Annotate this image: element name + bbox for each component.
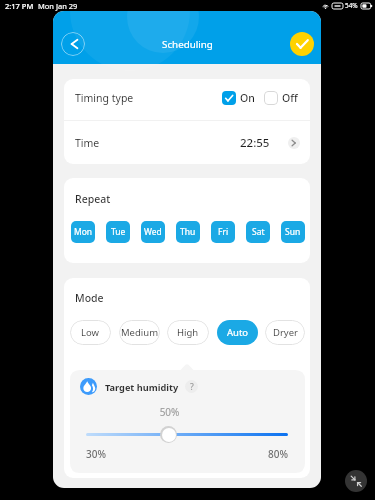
button[interactable]: Tue: [106, 221, 130, 243]
button[interactable]: Low: [70, 320, 111, 345]
staticText: Tue: [111, 226, 126, 238]
staticText: 50%: [149, 405, 190, 419]
staticText: Repeat: [75, 192, 111, 206]
button[interactable]: Back: [61, 32, 85, 56]
staticText: Fri: [218, 226, 229, 238]
button[interactable]: Off: [264, 91, 278, 105]
staticText: Mon: [74, 226, 93, 238]
button[interactable]: Help: [185, 380, 198, 393]
staticText: Mode: [75, 291, 104, 305]
staticText: 22:55: [240, 135, 270, 151]
staticText: Low: [81, 326, 100, 339]
staticText: Sun: [285, 226, 301, 238]
staticText: Thu: [180, 226, 196, 238]
button[interactable]: Timing type: [64, 79, 310, 120]
button[interactable]: Fri: [211, 221, 235, 243]
button[interactable]: Dryer: [265, 320, 305, 345]
staticText: 2:17 PM: [5, 1, 34, 11]
staticText: Dryer: [273, 326, 298, 339]
button[interactable]: High: [167, 320, 209, 345]
staticText: ?: [190, 381, 194, 393]
button[interactable]: Thu: [176, 221, 200, 243]
button[interactable]: Time: [64, 121, 310, 164]
button[interactable]: Minimize window: [345, 470, 367, 492]
staticText: Time: [75, 136, 100, 150]
staticText: Sat: [252, 226, 265, 238]
staticText: High: [177, 326, 199, 339]
staticText: Wed: [144, 226, 162, 238]
staticText: Timing type: [75, 91, 134, 105]
staticText: Medium: [121, 326, 159, 339]
button[interactable]: Confirm: [290, 32, 314, 56]
staticText: 30%: [86, 447, 106, 461]
staticText: Scheduling: [162, 38, 213, 51]
staticText: 80%: [248, 447, 288, 461]
button[interactable]: Humidity slider: [160, 426, 177, 443]
button[interactable]: Wed: [141, 221, 165, 243]
staticText: On: [240, 91, 255, 105]
button[interactable]: Auto: [217, 320, 258, 345]
staticText: Mon Jan 29: [38, 1, 78, 11]
staticText: 54%: [345, 1, 358, 10]
button[interactable]: Medium: [119, 320, 160, 345]
button[interactable]: Sun: [281, 221, 305, 243]
staticText: Auto: [227, 326, 249, 339]
button[interactable]: Mon: [71, 221, 95, 243]
staticText: Off: [282, 91, 298, 105]
staticText: Target humidity: [105, 381, 179, 394]
button[interactable]: Sat: [246, 221, 270, 243]
